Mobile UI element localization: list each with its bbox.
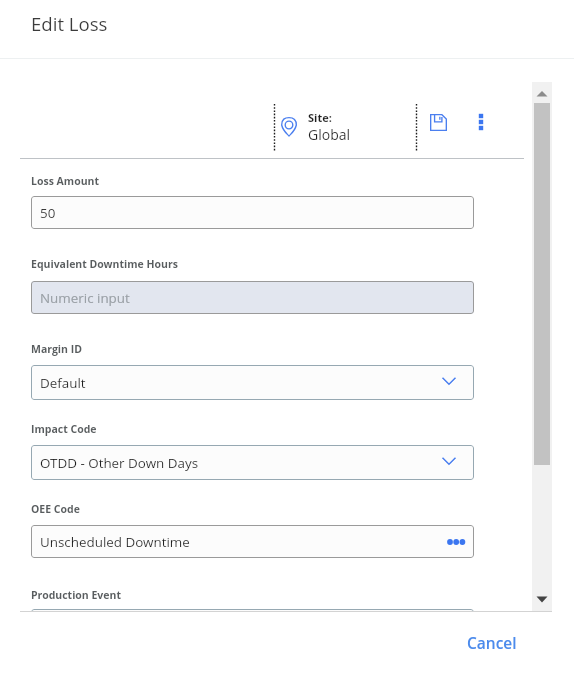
staticText: Production Event [31,588,122,602]
button[interactable]: More options [468,109,494,135]
staticText: Margin ID [31,342,82,356]
button[interactable]: Site: [281,107,351,147]
staticText: Global [308,125,351,144]
staticText: Numeric input [40,289,130,307]
staticText: Cancel [467,632,517,653]
staticText: Site: [308,110,332,125]
staticText: Equivalent Downtime Hours [31,257,178,271]
staticText: 50 [40,204,56,222]
button[interactable]: 50 [31,196,474,229]
button[interactable]: Cancel [460,625,524,660]
staticText: OEE Code [31,502,80,516]
button[interactable]: Default [31,365,474,400]
staticText: Loss Amount [31,174,100,188]
button[interactable]: Numeric input [31,281,474,314]
button[interactable]: OTDD - Other Down Days [31,445,474,480]
staticText: Impact Code [31,422,97,436]
staticText: OTDD - Other Down Days [40,454,199,472]
staticText: Default [40,374,86,392]
button[interactable]: Save [425,109,452,136]
button[interactable]: Unscheduled Downtime [31,525,474,558]
button[interactable]: Scroll [532,82,552,611]
staticText: Edit Loss [31,11,108,36]
staticText: Unscheduled Downtime [40,533,190,551]
button[interactable] [31,609,474,611]
